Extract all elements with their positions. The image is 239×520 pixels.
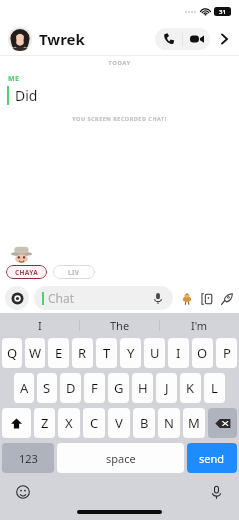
button[interactable]: Video call [183,28,210,50]
staticText: P [223,344,231,362]
staticText: L [211,379,218,397]
button[interactable]: W [25,338,45,368]
staticText: space [106,451,136,466]
staticText: send [199,451,225,466]
button[interactable]: A [14,373,34,403]
staticText: CHAYA [15,268,38,277]
button[interactable]: I [0,313,79,338]
button[interactable]: Backspace [208,408,237,438]
staticText: E [55,344,63,362]
staticText: W [29,344,42,362]
staticText: 31 [219,8,226,16]
staticText: Y [127,344,135,362]
staticText: R [78,344,87,362]
button[interactable]: Bitmoji sticker [179,291,194,306]
staticText: I [38,318,42,333]
staticText: M [188,414,200,432]
button[interactable]: Emoji keyboard [14,483,32,501]
button[interactable]: send [187,443,237,473]
button[interactable]: Voice call [155,28,182,50]
staticText: Z [41,414,49,432]
button[interactable]: B [133,408,155,438]
button[interactable]: Z [34,408,55,438]
staticText: Did [15,86,38,105]
button[interactable]: Shift [2,408,31,438]
button[interactable]: Profile avatar [8,27,32,51]
staticText: J [165,379,169,397]
staticText: U [150,344,160,362]
staticText: T [103,344,111,362]
staticText: Twrek [39,29,85,49]
staticText: Q [7,344,18,362]
staticText: LIV [68,268,80,277]
staticText: I'm [191,318,208,333]
button[interactable]: E [48,338,69,368]
button[interactable]: R [72,338,93,368]
button[interactable]: Voice message [151,291,165,305]
button[interactable]: P [216,338,237,368]
staticText: A [20,379,29,397]
button[interactable]: Y [120,338,141,368]
button[interactable]: Open profile [214,29,234,49]
button[interactable]: M [183,408,205,438]
button[interactable]: D [60,373,81,403]
staticText: YOU SCREEN RECORDED CHAT! [0,115,239,122]
button[interactable]: I'm [160,313,239,338]
button[interactable]: V [108,408,130,438]
button[interactable]: L [204,373,225,403]
button[interactable]: Open camera [5,286,29,310]
button[interactable]: C [83,408,105,438]
button[interactable]: 123 [2,443,54,473]
button[interactable]: Q [2,338,22,368]
staticText: V [115,414,123,432]
staticText: F [91,379,98,397]
button[interactable]: Send a rocket [219,291,234,306]
staticText: G [114,379,124,397]
staticText: TODAY [0,59,239,67]
button[interactable]: I [168,338,189,368]
staticText: H [138,379,148,397]
staticText: O [197,344,208,362]
button[interactable]: Chat [34,286,173,310]
staticText: I [176,344,181,362]
button[interactable]: G [108,373,129,403]
button[interactable]: X [58,408,80,438]
staticText: 123 [19,451,38,466]
button[interactable]: N [158,408,180,438]
staticText: ME [8,74,20,84]
staticText: Chat [48,290,75,306]
button[interactable]: O [192,338,213,368]
button[interactable]: S [37,373,57,403]
button[interactable]: K [180,373,201,403]
button[interactable]: CHAYA [6,265,47,279]
staticText: C [90,414,99,432]
staticText: X [65,414,73,432]
button[interactable]: F [84,373,105,403]
staticText: S [43,379,51,397]
button[interactable]: Stickers [199,291,214,306]
staticText: The [110,318,130,333]
button[interactable]: space [57,443,184,473]
button[interactable]: H [132,373,153,403]
button[interactable]: T [96,338,117,368]
button[interactable]: LIV [53,265,95,279]
button[interactable]: Dictation [207,483,225,501]
button[interactable]: The [80,313,159,338]
staticText: D [66,379,76,397]
button[interactable]: J [156,373,177,403]
staticText: K [186,379,195,397]
staticText: N [164,414,174,432]
staticText: B [140,414,149,432]
button[interactable]: U [144,338,165,368]
